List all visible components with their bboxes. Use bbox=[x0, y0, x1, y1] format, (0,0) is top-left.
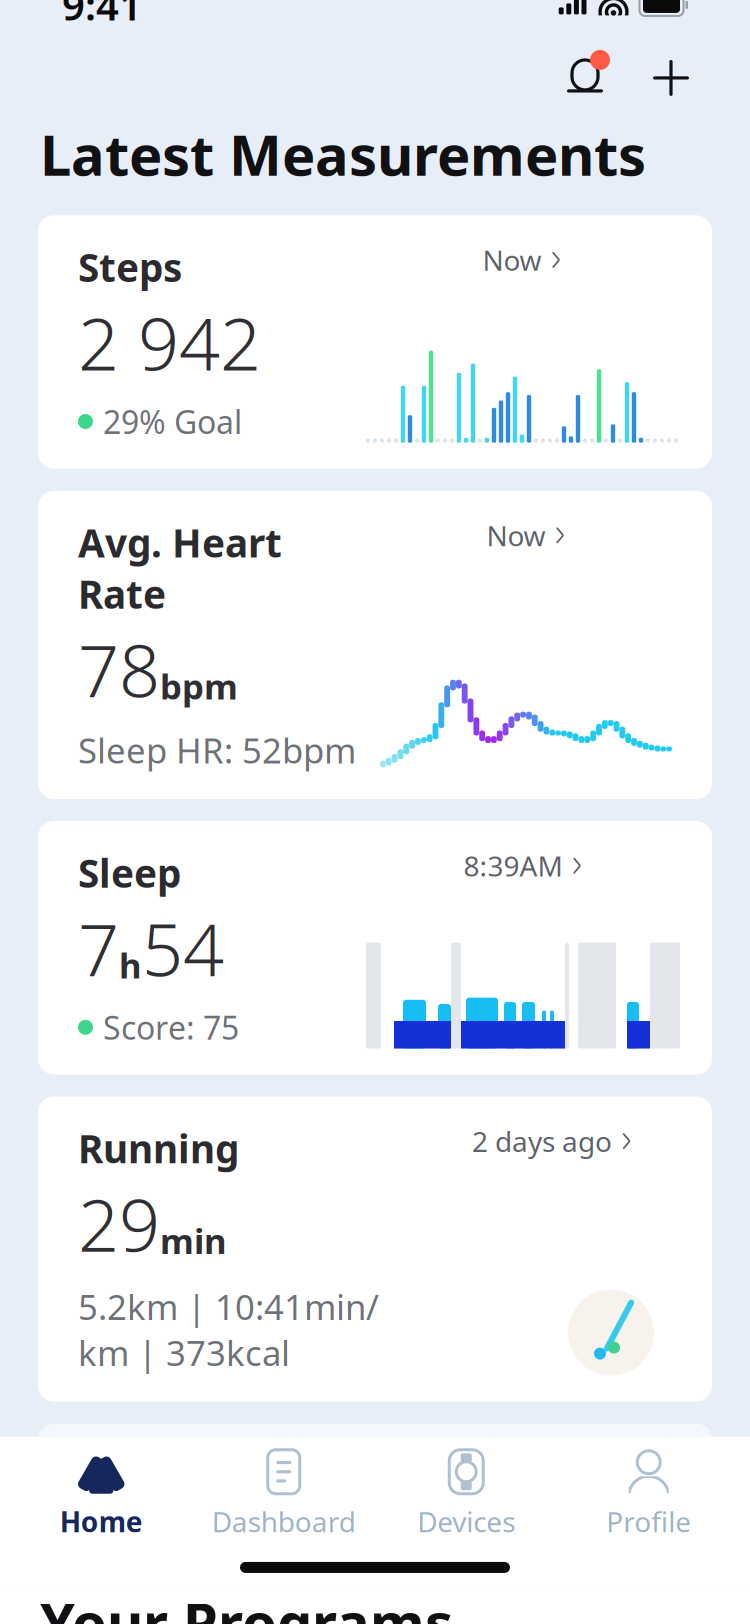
staticText: Steps bbox=[78, 241, 182, 293]
staticText: Devices bbox=[417, 1503, 515, 1540]
button[interactable]: Devices bbox=[375, 1437, 557, 1544]
button[interactable]: Dashboard bbox=[192, 1437, 375, 1544]
staticText: 29 bbox=[78, 1176, 160, 1271]
staticText: 7 bbox=[78, 900, 119, 996]
button[interactable]: Notifications bbox=[558, 51, 612, 105]
staticText: bpm bbox=[160, 663, 238, 709]
staticText: Profile bbox=[606, 1503, 691, 1540]
staticText: Sleep HR: 52bpm bbox=[78, 727, 356, 773]
button[interactable]: Running bbox=[38, 1097, 712, 1402]
staticText: 5.2km | 10:41min/km | 373kcal bbox=[78, 1283, 379, 1376]
button[interactable]: Avg. Heart Rate bbox=[38, 491, 712, 799]
staticText: h bbox=[119, 942, 142, 988]
staticText: 54 bbox=[142, 900, 224, 996]
staticText: Running bbox=[78, 1123, 239, 1174]
button[interactable]: Profile bbox=[557, 1437, 740, 1544]
button[interactable]: Add bbox=[648, 55, 694, 101]
staticText: Avg. Heart Rate bbox=[78, 517, 282, 619]
staticText: Home bbox=[60, 1503, 143, 1540]
staticText: Score: 75 bbox=[103, 1006, 239, 1049]
staticText: 8:39AM bbox=[463, 847, 562, 884]
staticText: Your Programs bbox=[40, 1585, 453, 1624]
staticText: 29% Goal bbox=[103, 400, 242, 443]
staticText: Latest Measurements bbox=[40, 117, 646, 191]
staticText: 2 days ago bbox=[472, 1123, 612, 1160]
button[interactable]: Home bbox=[10, 1437, 192, 1544]
staticText: Sleep bbox=[78, 847, 181, 898]
staticText: 78 bbox=[78, 621, 160, 717]
staticText: 2 942 bbox=[78, 295, 261, 390]
button[interactable]: Sleep bbox=[38, 821, 712, 1075]
staticText: min bbox=[160, 1217, 227, 1263]
button[interactable]: Steps bbox=[38, 215, 712, 469]
staticText: Dashboard bbox=[212, 1503, 356, 1540]
button[interactable]: All Health Data bbox=[38, 1424, 712, 1549]
staticText: 9:41 bbox=[62, 0, 142, 31]
staticText: All Health Data bbox=[78, 1460, 378, 1513]
staticText: Now bbox=[482, 241, 541, 278]
staticText: Now bbox=[486, 517, 545, 554]
